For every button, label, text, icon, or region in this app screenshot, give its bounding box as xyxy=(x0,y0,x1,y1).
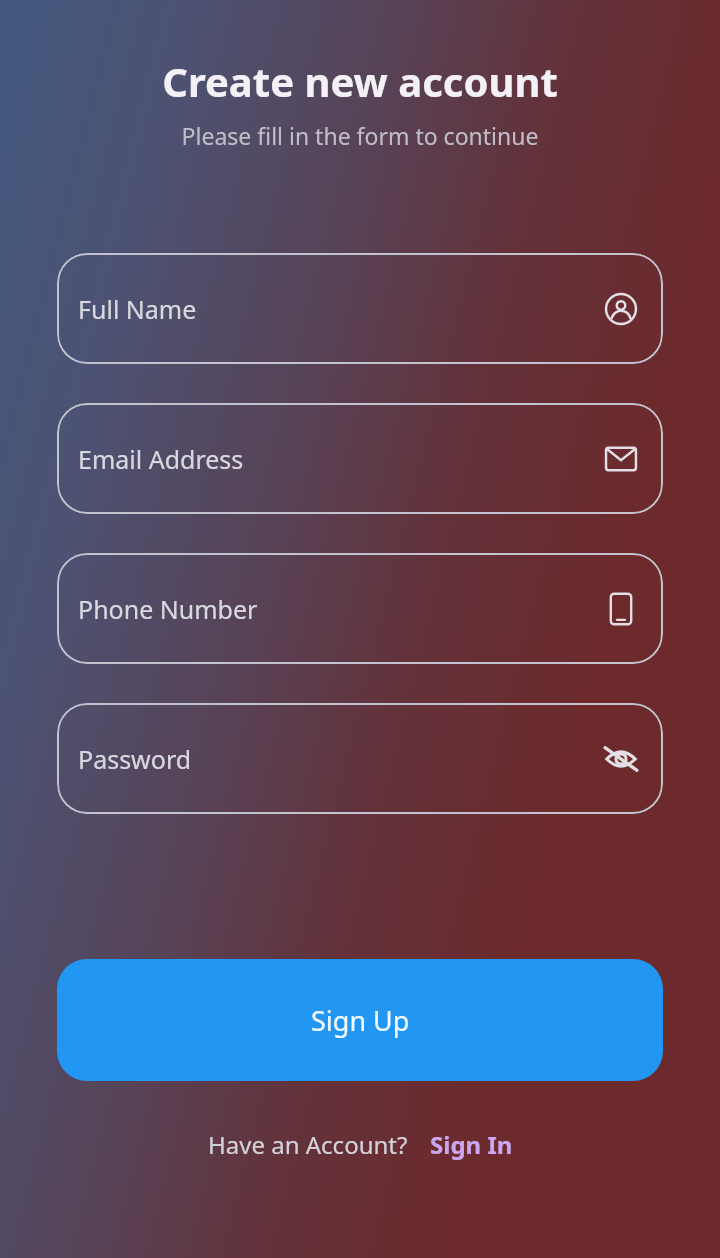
button[interactable]: Phone Number xyxy=(57,553,663,664)
staticText: Phone Number xyxy=(78,592,258,626)
button[interactable]: Sign In xyxy=(430,1128,513,1161)
staticText: Sign In xyxy=(430,1128,513,1161)
button[interactable]: Sign Up xyxy=(57,959,663,1081)
staticText: Have an Account? xyxy=(208,1128,408,1161)
staticText: Sign Up xyxy=(311,1002,410,1039)
button[interactable]: Full Name xyxy=(57,253,663,364)
other: Show password xyxy=(600,738,642,780)
staticText: Create new account xyxy=(0,54,720,108)
button[interactable]: Email Address xyxy=(57,403,663,514)
button[interactable]: Password xyxy=(57,703,663,814)
other: Email xyxy=(600,438,642,480)
staticText: Please fill in the form to continue xyxy=(0,120,720,151)
staticText: Full Name xyxy=(78,292,197,326)
other: Phone xyxy=(600,588,642,630)
staticText: Email Address xyxy=(78,442,244,476)
other: Account xyxy=(600,288,642,330)
staticText: Password xyxy=(78,742,192,776)
